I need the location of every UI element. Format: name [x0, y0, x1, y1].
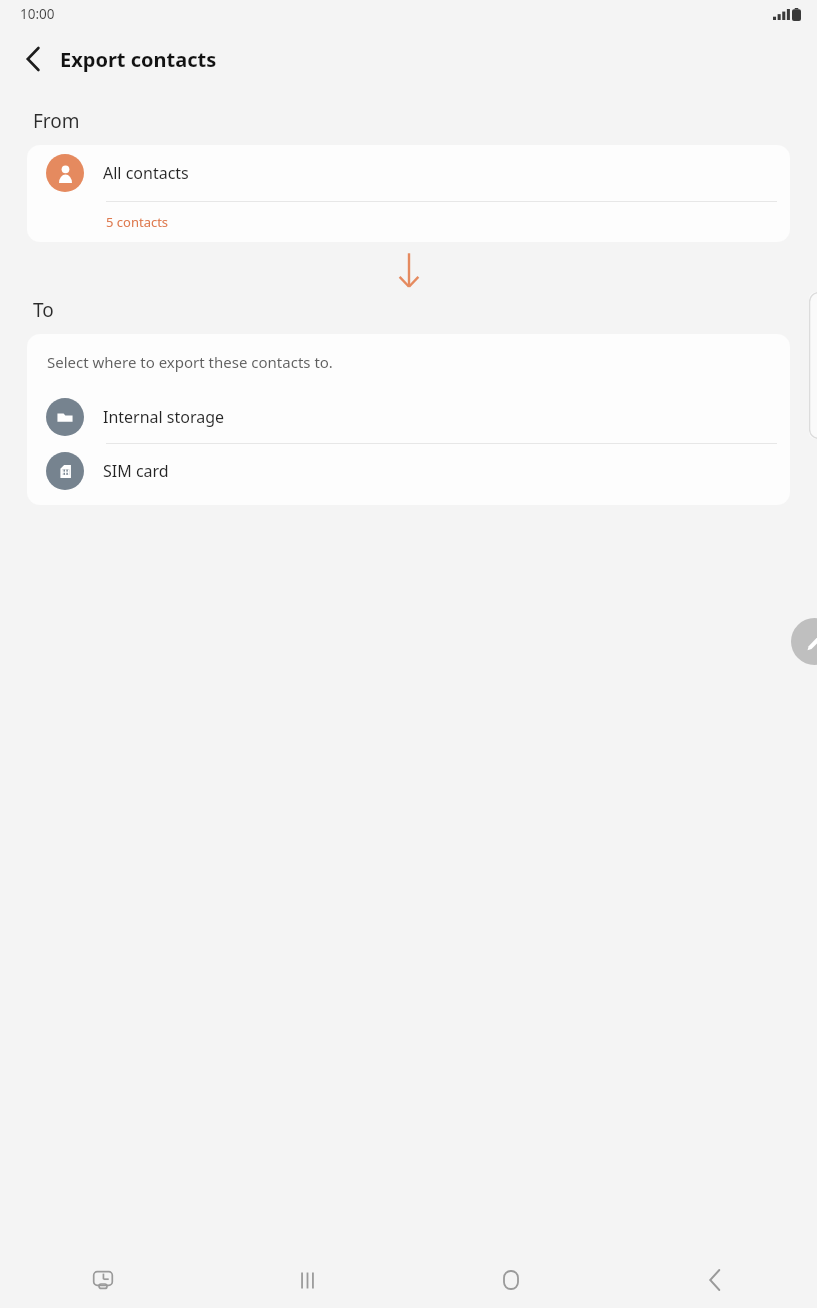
staticText: Export contacts	[60, 46, 217, 73]
button[interactable]: Home	[409, 1252, 613, 1308]
staticText: To	[33, 297, 54, 323]
staticText: 10:00	[20, 5, 55, 23]
staticText: 5 contacts	[106, 213, 169, 231]
staticText: From	[33, 108, 80, 134]
button[interactable]: Edit	[791, 618, 817, 665]
button[interactable]: All contacts	[27, 145, 790, 201]
button[interactable]: Back	[613, 1252, 817, 1308]
staticText: Select where to export these contacts to…	[47, 352, 333, 372]
staticText: All contacts	[103, 162, 189, 184]
staticText: Internal storage	[103, 406, 225, 428]
button[interactable]: Recent apps	[205, 1252, 409, 1308]
button[interactable]: SIM card	[27, 444, 790, 497]
staticText: SIM card	[103, 460, 169, 482]
button[interactable]: Capture screenshot	[0, 1252, 205, 1308]
button[interactable]: Back	[12, 38, 54, 80]
button[interactable]: Internal storage	[27, 390, 790, 443]
